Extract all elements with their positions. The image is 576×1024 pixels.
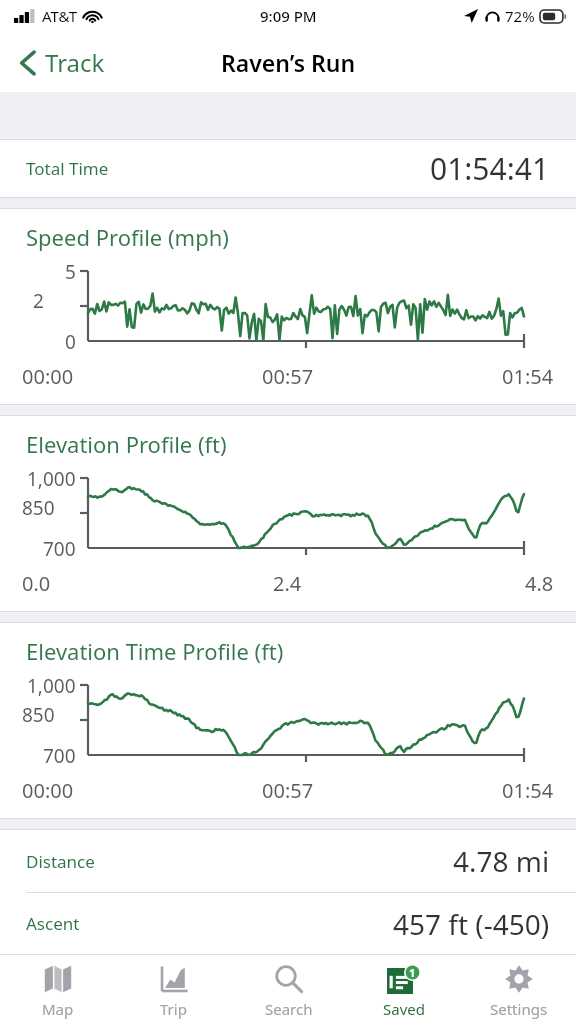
staticText: 4.78 mi [453, 842, 550, 880]
staticText: Search [265, 999, 313, 1019]
staticText: 00:57 [262, 777, 314, 804]
button[interactable]: Track [14, 40, 111, 85]
staticText: 1,000 [27, 466, 76, 492]
staticText: AT&T [42, 6, 77, 26]
staticText: 0 [65, 329, 76, 349]
staticText: Elevation Time Profile (ft) [26, 636, 284, 666]
staticText: 00:57 [262, 363, 314, 390]
staticText: 700 [43, 536, 76, 556]
button[interactable]: Map [0, 955, 116, 1024]
staticText: 850 [22, 495, 55, 521]
button[interactable]: Saved [346, 955, 461, 1024]
staticText: 00:00 [22, 363, 74, 390]
staticText: 1,000 [27, 673, 76, 699]
other: Trip [159, 964, 189, 994]
staticText: Total Time [26, 157, 109, 180]
staticText: Distance [26, 850, 95, 873]
button[interactable]: Ascent [0, 893, 576, 954]
staticText: Ascent [26, 912, 80, 935]
button[interactable]: Total Time [0, 140, 576, 197]
button[interactable]: Distance [0, 830, 576, 892]
staticText: Raven’s Run [221, 47, 356, 78]
staticText: Elevation Profile (ft) [26, 429, 227, 459]
staticText: 2 [33, 288, 44, 314]
staticText: Trip [160, 999, 187, 1019]
other: Settings [504, 964, 534, 994]
staticText: Track [45, 46, 105, 79]
staticText: 850 [22, 702, 55, 728]
button[interactable]: Search [231, 955, 346, 1024]
staticText: Saved [383, 999, 425, 1019]
staticText: 01:54 [502, 777, 554, 804]
other: Map [43, 964, 73, 994]
staticText: Speed Profile (mph) [26, 222, 229, 252]
staticText: 4.8 [525, 570, 554, 597]
staticText: 72% [505, 6, 535, 26]
staticText: Map [42, 999, 74, 1019]
button[interactable]: Settings [461, 955, 576, 1024]
staticText: 700 [43, 743, 76, 763]
other: Saved [387, 964, 421, 994]
button[interactable]: Trip [116, 955, 231, 1024]
staticText: 2.4 [273, 570, 302, 597]
staticText: 5 [65, 259, 76, 285]
staticText: 9:09 PM [260, 6, 317, 26]
staticText: 1 [409, 965, 416, 980]
staticText: Settings [490, 999, 548, 1019]
staticText: 01:54 [502, 363, 554, 390]
staticText: 0.0 [22, 570, 51, 597]
other: Search [274, 964, 304, 994]
staticText: 00:00 [22, 777, 74, 804]
staticText: 01:54:41 [430, 148, 550, 189]
staticText: 457 ft (-450) [393, 905, 550, 943]
